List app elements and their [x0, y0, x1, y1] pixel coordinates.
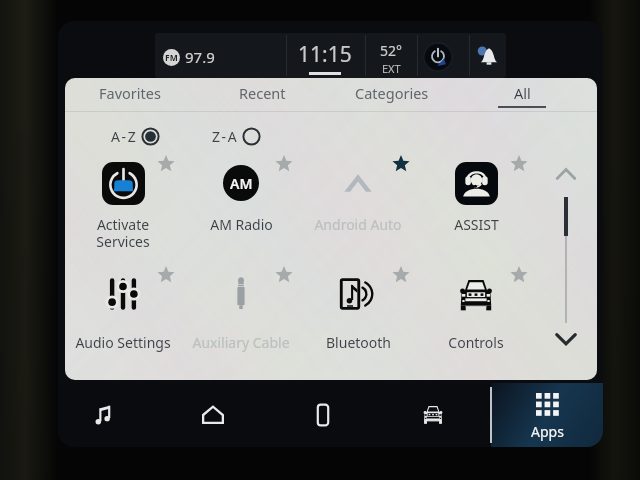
- button[interactable]: A-Z: [111, 122, 160, 150]
- button[interactable]: [65, 143, 181, 243]
- staticText: AM: [230, 174, 253, 193]
- staticText: Categories: [355, 83, 429, 103]
- button[interactable]: Phone: [283, 383, 363, 447]
- button[interactable]: Apps: [491, 383, 603, 447]
- staticText: A-Z: [111, 127, 138, 146]
- button[interactable]: 52°: [368, 41, 414, 76]
- button[interactable]: Notifications: [467, 35, 511, 79]
- staticText: EXT: [382, 61, 401, 76]
- staticText: AM Radio: [210, 215, 273, 234]
- button[interactable]: Vehicle status: [416, 35, 460, 79]
- button[interactable]: [418, 143, 534, 243]
- staticText: 97.9: [185, 47, 215, 67]
- staticText: Apps: [531, 422, 564, 441]
- button[interactable]: [300, 143, 416, 243]
- button[interactable]: Favorites: [65, 78, 196, 111]
- staticText: Recent: [239, 83, 286, 103]
- button[interactable]: [418, 254, 534, 354]
- staticText: ASSIST: [454, 215, 499, 234]
- button[interactable]: 11:15: [295, 40, 355, 81]
- button[interactable]: Vehicle: [393, 383, 473, 447]
- staticText: Auxiliary Cable: [192, 333, 290, 352]
- staticText: 52°: [380, 41, 403, 60]
- staticText: FM: [165, 52, 178, 64]
- staticText: Activate Services: [96, 215, 150, 251]
- staticText: Bluetooth: [326, 333, 391, 352]
- button[interactable]: Media: [64, 383, 144, 447]
- button[interactable]: [65, 254, 181, 354]
- staticText: Android Auto: [314, 215, 402, 234]
- button[interactable]: Recent: [196, 78, 328, 111]
- staticText: Audio Settings: [75, 333, 171, 352]
- staticText: 11:15: [298, 40, 352, 69]
- button[interactable]: [183, 143, 299, 243]
- staticText: All: [514, 83, 531, 103]
- button[interactable]: [183, 254, 299, 354]
- staticText: Favorites: [99, 83, 161, 103]
- button[interactable]: Z-A: [212, 122, 261, 150]
- button[interactable]: FM: [163, 47, 215, 67]
- staticText: Z-A: [212, 127, 239, 146]
- button[interactable]: Scroll up: [549, 157, 583, 191]
- button[interactable]: Home: [173, 383, 253, 447]
- button[interactable]: Scroll down: [549, 322, 583, 356]
- button[interactable]: All: [456, 78, 588, 111]
- staticText: Controls: [448, 333, 504, 352]
- button[interactable]: Categories: [326, 78, 458, 111]
- button[interactable]: [300, 254, 416, 354]
